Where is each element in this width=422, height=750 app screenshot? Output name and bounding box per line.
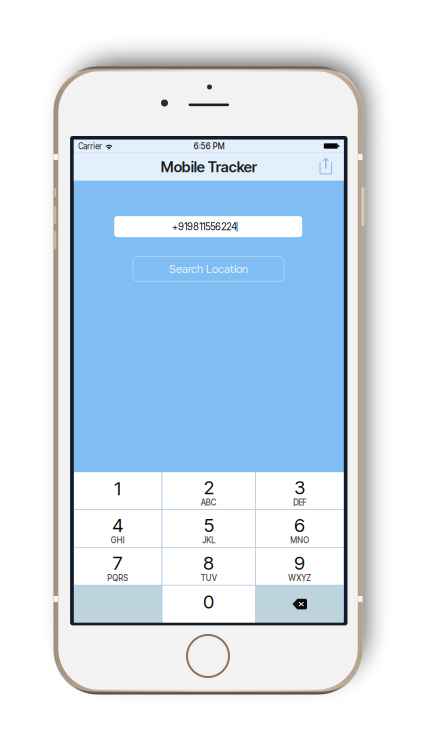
staticText: 4 [112, 514, 123, 536]
staticText: 0 [203, 590, 214, 613]
staticText: 2 [204, 476, 214, 499]
staticText: 3 [294, 476, 305, 499]
staticText: DEF [293, 498, 306, 507]
staticText: MNO [290, 535, 309, 545]
button[interactable]: 1 [74, 472, 162, 509]
staticText: 6:56 PM [194, 141, 225, 151]
staticText: 8 [203, 552, 214, 574]
staticText: PQRS [107, 573, 128, 583]
staticText: ABC [201, 498, 217, 507]
button[interactable]: 2 [162, 472, 255, 509]
button[interactable]: Search Location [133, 256, 284, 281]
button[interactable]: Delete [256, 586, 344, 623]
button[interactable]: 9 [256, 548, 344, 585]
staticText: Mobile Tracker [161, 158, 257, 176]
staticText: GHI [111, 535, 125, 545]
staticText: 5 [204, 514, 214, 536]
button[interactable]: 6 [256, 510, 344, 547]
button[interactable]: 3 [256, 472, 344, 509]
button[interactable]: 8 [162, 548, 255, 585]
staticText: Search Location [169, 262, 248, 276]
staticText: Carrier [78, 141, 102, 151]
staticText: +919811556224 [172, 221, 237, 233]
staticText: 6 [294, 514, 305, 536]
staticText: 1 [114, 477, 121, 500]
button[interactable]: 0 [162, 586, 255, 623]
staticText: 9 [294, 552, 305, 574]
staticText: TUV [201, 573, 217, 583]
button[interactable]: 4 [74, 510, 162, 547]
staticText: 7 [113, 552, 123, 574]
button[interactable]: Blank [74, 586, 162, 623]
button[interactable]: Share [312, 152, 340, 180]
button[interactable]: 5 [162, 510, 255, 547]
staticText: JKL [202, 535, 215, 545]
button[interactable]: 7 [74, 548, 162, 585]
staticText: WXYZ [288, 573, 311, 583]
